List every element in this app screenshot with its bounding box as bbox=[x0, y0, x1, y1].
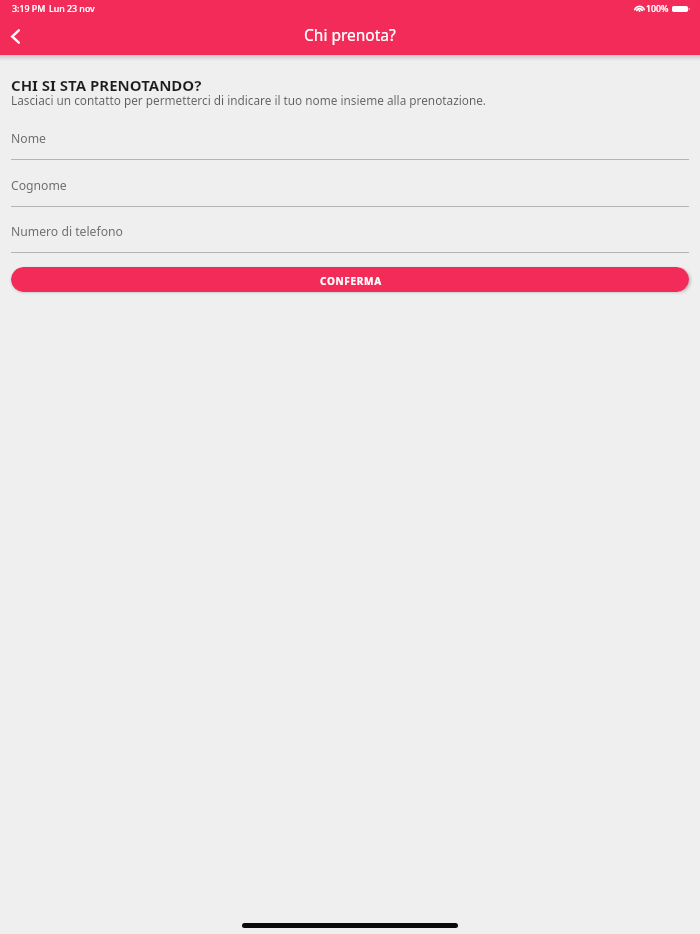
staticText: Lasciaci un contatto per permetterci di … bbox=[11, 92, 487, 108]
staticText: Cognome bbox=[11, 177, 67, 194]
button[interactable]: Back bbox=[0, 21, 30, 51]
staticText: Nome bbox=[11, 130, 46, 147]
button[interactable]: CONFERMA bbox=[11, 267, 689, 292]
staticText: Numero di telefono bbox=[11, 223, 123, 240]
staticText: 3:19 PM bbox=[12, 3, 46, 15]
button[interactable]: Numero di telefono bbox=[0, 223, 700, 253]
button[interactable]: Cognome bbox=[0, 177, 700, 207]
staticText: Lun 23 nov bbox=[49, 3, 95, 15]
staticText: 100% bbox=[646, 3, 669, 15]
button[interactable]: Nome bbox=[0, 130, 700, 160]
staticText: Chi prenota? bbox=[304, 24, 396, 45]
staticText: CHI SI STA PRENOTANDO? bbox=[11, 75, 202, 95]
staticText: CONFERMA bbox=[320, 274, 382, 288]
